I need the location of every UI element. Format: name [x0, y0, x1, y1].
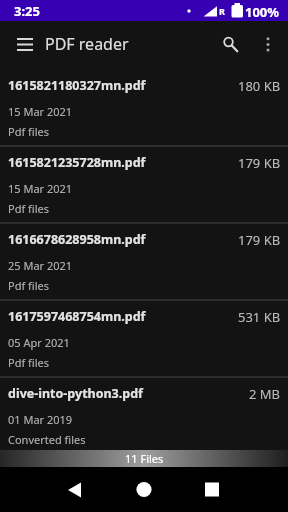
staticText: Pdf files	[8, 201, 49, 216]
staticText: 531 KB	[238, 308, 281, 326]
staticText: 01 Mar 2019	[8, 412, 73, 427]
button[interactable]: 1615821235728mn.pdf	[0, 147, 288, 224]
staticText: 25 Mar 2021	[8, 258, 73, 273]
staticText: PDF reader	[45, 33, 129, 55]
staticText: 15 Mar 2021	[8, 104, 73, 119]
staticText: 11 Files	[125, 451, 164, 466]
button[interactable]	[48, 467, 96, 512]
staticText: dive-into-python3.pdf	[8, 385, 143, 402]
staticText: 1617597468754mn.pdf	[8, 308, 146, 325]
staticText: 179 KB	[238, 154, 281, 172]
staticText: 2 MB	[249, 385, 281, 403]
staticText: 3:25	[14, 2, 40, 20]
staticText: Pdf files	[8, 355, 49, 370]
staticText: 05 Apr 2021	[8, 335, 70, 350]
staticText: 100%	[245, 3, 280, 21]
button[interactable]	[192, 467, 240, 512]
staticText: 1615821235728mn.pdf	[8, 154, 146, 171]
staticText: Converted files	[8, 432, 86, 447]
button[interactable]	[11, 32, 39, 54]
button[interactable]: 1615821180327mn.pdf	[0, 70, 288, 147]
button[interactable]: 1617597468754mn.pdf	[0, 301, 288, 378]
staticText: 180 KB	[238, 77, 281, 95]
staticText: Pdf files	[8, 278, 49, 293]
staticText: 1616678628958mn.pdf	[8, 231, 146, 248]
button[interactable]	[215, 31, 243, 59]
button[interactable]	[256, 31, 280, 55]
staticText: 179 KB	[238, 231, 281, 249]
button[interactable]	[120, 467, 168, 512]
staticText: Pdf files	[8, 124, 49, 139]
button[interactable]: 1616678628958mn.pdf	[0, 224, 288, 301]
button[interactable]: dive-into-python3.pdf	[0, 378, 288, 450]
staticText: 1615821180327mn.pdf	[8, 77, 146, 94]
staticText: R	[219, 5, 225, 17]
staticText: 15 Mar 2021	[8, 181, 73, 196]
